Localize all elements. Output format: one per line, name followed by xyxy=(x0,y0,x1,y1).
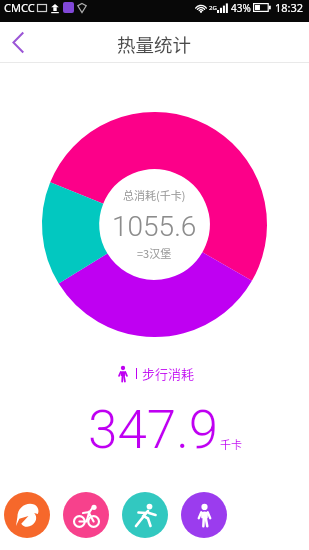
button[interactable]: Calories xyxy=(4,492,50,538)
staticText: 43% xyxy=(231,1,251,15)
staticText: 347.9 xyxy=(88,399,219,461)
staticText: =3汉堡 xyxy=(137,245,172,261)
staticText: 2G xyxy=(209,4,217,12)
staticText: 步行消耗 xyxy=(142,364,195,383)
staticText: CMCC xyxy=(4,0,35,15)
button[interactable]: Back xyxy=(1,26,34,59)
button[interactable]: Walking xyxy=(181,492,227,538)
staticText: 千卡 xyxy=(220,436,242,452)
staticText: 热量统计 xyxy=(117,31,192,58)
button[interactable]: Cycling xyxy=(63,492,109,538)
staticText: 总消耗(千卡) xyxy=(123,187,186,203)
staticText: 18:32 xyxy=(275,0,304,15)
button[interactable]: Running xyxy=(122,492,168,538)
staticText: 1055.6 xyxy=(112,210,197,243)
